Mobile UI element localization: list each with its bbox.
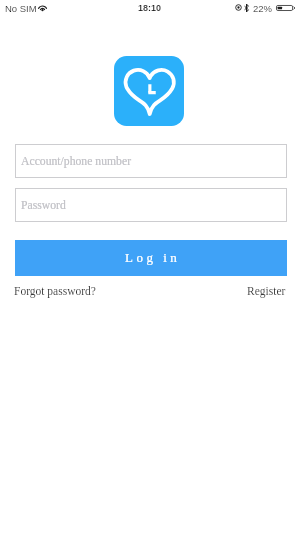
button[interactable]: Forgot password? [14,285,96,298]
button[interactable]: Register [247,285,286,298]
staticText: Password [21,199,66,212]
staticText: Forgot password? [14,285,96,298]
staticText: 18:10 [138,3,162,13]
button[interactable]: Password [15,188,287,222]
staticText: Account/phone number [21,155,132,168]
staticText: Register [247,285,286,298]
other: App logo [114,56,184,126]
other: Wi-Fi [38,4,47,11]
other: Rotation lock [235,4,242,11]
button[interactable]: Log in [15,240,287,276]
staticText: 22% [253,3,273,14]
staticText: Log in [125,250,181,264]
staticText: No SIM [5,3,37,14]
button[interactable]: Account/phone number [15,144,287,178]
other: Battery 22 percent [276,5,295,11]
